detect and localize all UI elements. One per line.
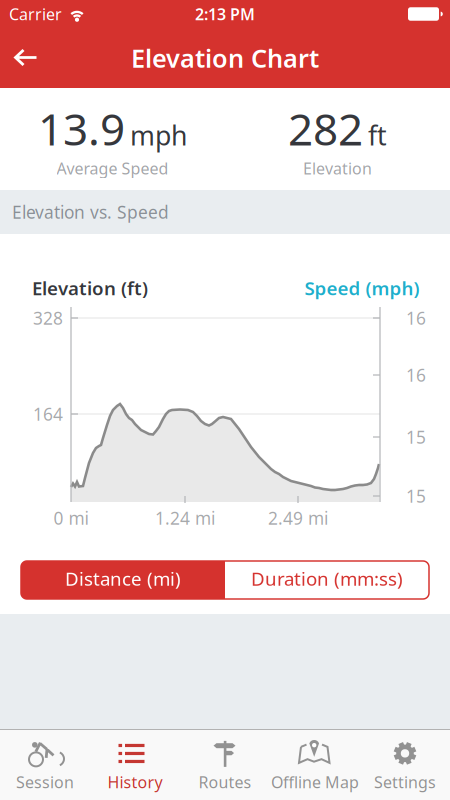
staticText: 13.9 xyxy=(38,99,125,158)
staticText: 282 xyxy=(288,99,363,158)
button[interactable]: Duration (mm:ss) xyxy=(225,561,429,599)
staticText: 164 xyxy=(33,402,63,425)
staticText: Speed (mph) xyxy=(304,276,419,300)
staticText: mph xyxy=(130,117,187,153)
staticText: 16 xyxy=(406,306,426,329)
staticText: Settings xyxy=(374,771,436,793)
staticText: Elevation Chart xyxy=(131,41,319,75)
staticText: 328 xyxy=(33,306,63,329)
staticText: Distance (mi) xyxy=(65,566,181,591)
button[interactable]: Session xyxy=(0,730,90,800)
staticText: 15 xyxy=(406,425,426,448)
staticText: 2.49 mi xyxy=(268,506,328,529)
staticText: Elevation (ft) xyxy=(32,276,148,300)
staticText: Average Speed xyxy=(56,158,168,179)
staticText: Session xyxy=(16,771,74,793)
staticText: 2:13 PM xyxy=(195,3,255,25)
staticText: 0 mi xyxy=(53,506,88,529)
button[interactable]: Settings xyxy=(360,730,450,800)
staticText: Elevation vs. Speed xyxy=(12,200,169,223)
staticText: Elevation xyxy=(303,158,372,179)
button[interactable]: Routes xyxy=(180,730,270,800)
button[interactable]: Offline Map xyxy=(270,730,360,800)
staticText: 16 xyxy=(406,363,426,386)
button[interactable]: Distance (mi) xyxy=(21,561,225,599)
staticText: Carrier xyxy=(9,3,62,25)
staticText: Offline Map xyxy=(271,771,359,793)
button[interactable]: History xyxy=(90,730,180,800)
staticText: 15 xyxy=(406,484,426,507)
staticText: 1.24 mi xyxy=(155,506,215,529)
button[interactable]: Back xyxy=(8,38,48,78)
staticText: History xyxy=(107,771,162,793)
staticText: ft xyxy=(368,117,387,153)
staticText: Routes xyxy=(198,771,251,793)
staticText: Duration (mm:ss) xyxy=(251,566,403,591)
